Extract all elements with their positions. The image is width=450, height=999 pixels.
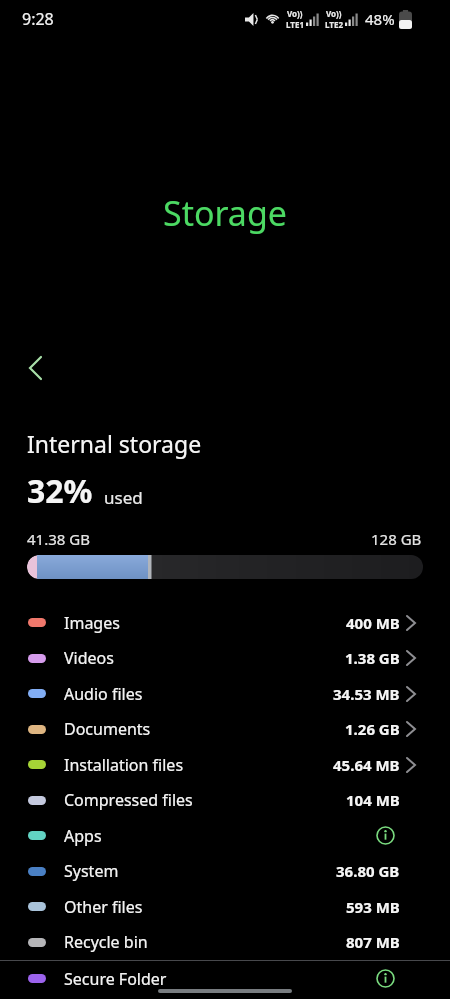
staticText: 128 GB	[371, 529, 422, 549]
staticText: Images	[64, 612, 120, 634]
staticText: Storage	[0, 190, 450, 236]
staticText: Other files	[64, 896, 143, 918]
staticText: 41.38 GB	[27, 529, 90, 549]
button[interactable]: Other files	[0, 889, 450, 924]
staticText: 36.80 GB	[336, 861, 400, 881]
staticText: 593 MB	[346, 897, 400, 917]
staticText: LTE1	[286, 19, 304, 30]
staticText: 34.53 MB	[333, 684, 400, 704]
button[interactable]: Audio files	[0, 676, 450, 711]
button[interactable]: System	[0, 853, 450, 889]
staticText: Recycle bin	[64, 931, 148, 953]
button[interactable]: Recycle bin	[0, 924, 450, 960]
staticText: Vo))	[287, 8, 303, 19]
staticText: Apps	[64, 825, 102, 847]
button[interactable]: Apps	[0, 818, 450, 853]
button[interactable]: Videos	[0, 640, 450, 676]
staticText: System	[64, 860, 119, 882]
staticText: Installation files	[64, 754, 184, 776]
staticText: 48%	[365, 9, 395, 29]
staticText: 104 MB	[346, 790, 400, 810]
staticText: 1.38 GB	[345, 648, 400, 668]
staticText: 9:28	[22, 8, 54, 30]
staticText: Compressed files	[64, 789, 193, 811]
staticText: used	[104, 486, 143, 509]
staticText: 400 MB	[346, 613, 400, 633]
staticText: 45.64 MB	[333, 755, 400, 775]
button[interactable]	[13, 346, 57, 390]
staticText: 807 MB	[346, 932, 400, 952]
button[interactable]: Installation files	[0, 747, 450, 782]
button[interactable]: Secure Folder	[0, 961, 450, 996]
staticText: LTE2	[325, 19, 343, 30]
button[interactable]: Documents	[0, 711, 450, 747]
staticText: Secure Folder	[64, 968, 167, 990]
button[interactable]: Images	[0, 605, 450, 640]
staticText: Documents	[64, 718, 151, 740]
staticText: Internal storage	[27, 428, 202, 459]
staticText: 1.26 GB	[345, 719, 400, 739]
staticText: Vo))	[326, 8, 342, 19]
staticText: Audio files	[64, 683, 143, 705]
staticText: Videos	[64, 647, 114, 669]
button[interactable]: Compressed files	[0, 782, 450, 818]
staticText: 32%	[27, 469, 93, 513]
